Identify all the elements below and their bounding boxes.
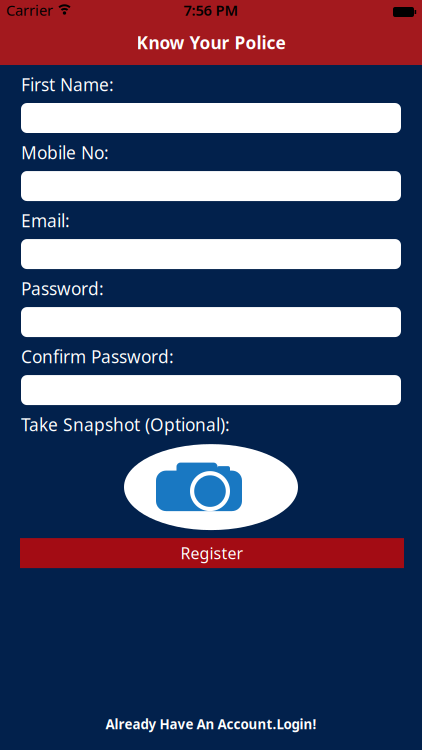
staticText: Already Have An Account.Login! <box>105 715 316 733</box>
staticText: First Name: <box>21 73 114 96</box>
staticText: Know Your Police <box>136 31 285 54</box>
staticText: Register <box>180 542 243 564</box>
staticText: Take Snapshot (Optional): <box>21 413 230 436</box>
staticText: Mobile No: <box>21 141 109 164</box>
staticText: Confirm Password: <box>21 345 174 368</box>
staticText: Carrier <box>6 0 53 20</box>
staticText: Password: <box>21 277 104 300</box>
button[interactable]: Take Snapshot <box>124 444 298 530</box>
textField[interactable]: Email <box>21 239 401 269</box>
staticText: Email: <box>21 209 70 232</box>
button[interactable]: Register <box>20 538 404 568</box>
button[interactable]: Already Have An Account.Login! <box>105 715 316 733</box>
secureTextField[interactable]: Confirm Password <box>21 375 401 405</box>
textField[interactable]: First Name <box>21 103 401 133</box>
staticText: 7:56 PM <box>183 0 238 20</box>
secureTextField[interactable]: Password <box>21 307 401 337</box>
textField[interactable]: Mobile No <box>21 171 401 201</box>
